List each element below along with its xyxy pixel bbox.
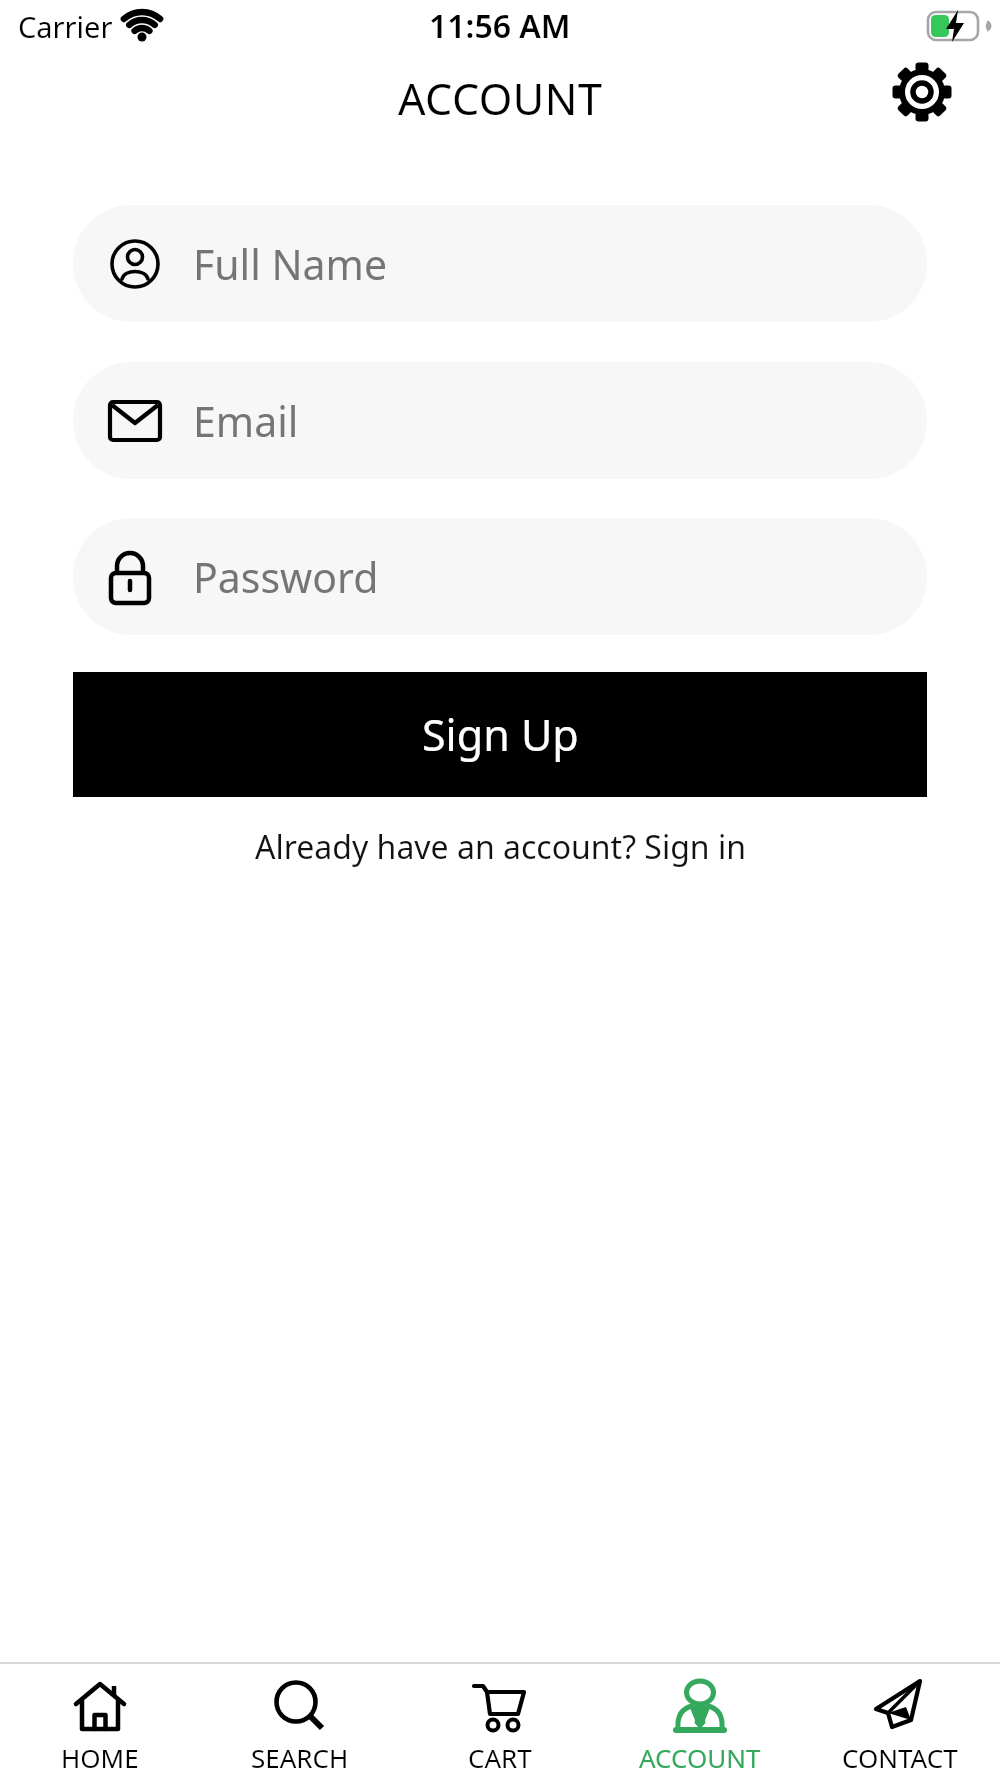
button[interactable]: HOME (0, 1664, 200, 1778)
button[interactable]: Email (73, 362, 927, 479)
staticText: Email (193, 393, 299, 449)
button[interactable]: CART (400, 1664, 600, 1778)
staticText: ACCOUNT (398, 69, 603, 128)
staticText: SEARCH (251, 1740, 349, 1775)
staticText: Password (193, 549, 379, 605)
staticText: Sign Up (422, 705, 579, 764)
staticText: CART (468, 1740, 532, 1775)
staticText: Already have an account? Sign in (255, 825, 746, 869)
staticText: Carrier (18, 7, 113, 46)
staticText: HOME (61, 1740, 139, 1775)
staticText: ACCOUNT (639, 1740, 761, 1775)
button[interactable]: Password (73, 518, 927, 635)
button[interactable]: CONTACT (800, 1664, 1000, 1778)
button[interactable] (890, 60, 954, 124)
button[interactable]: Sign Up (73, 672, 927, 797)
staticText: Full Name (193, 236, 388, 292)
staticText: 11:56 AM (429, 4, 571, 48)
button[interactable]: Full Name (73, 205, 927, 322)
button[interactable]: SEARCH (200, 1664, 400, 1778)
button[interactable]: ACCOUNT (600, 1664, 800, 1778)
button[interactable]: Already have an account? Sign in (0, 825, 1000, 869)
staticText: CONTACT (842, 1740, 958, 1775)
